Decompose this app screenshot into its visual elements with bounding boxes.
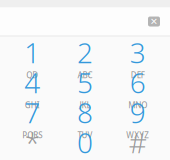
staticText: 4 — [24, 64, 40, 101]
staticText: ✕ — [150, 16, 158, 27]
button[interactable]: 1 — [6, 41, 59, 71]
staticText: DEF — [131, 70, 145, 80]
staticText: QD — [26, 70, 38, 80]
button[interactable]: 6 — [111, 71, 164, 101]
staticText: TUV — [77, 130, 92, 140]
staticText: * — [25, 124, 40, 160]
staticText: 1 — [24, 34, 40, 71]
staticText: 3 — [130, 34, 146, 71]
staticText: ABC — [77, 70, 92, 80]
button[interactable]: 7 — [6, 101, 59, 131]
staticText: 0 — [77, 124, 93, 160]
staticText: 5 — [77, 64, 93, 101]
staticText: 6 — [130, 64, 146, 101]
staticText: 8 — [77, 94, 93, 131]
staticText: GHI — [25, 100, 40, 110]
button[interactable]: # — [111, 131, 164, 160]
staticText: 7 — [24, 94, 40, 131]
staticText: 9 — [130, 94, 146, 131]
button[interactable]: 3 — [111, 41, 164, 71]
button[interactable]: 0 — [59, 131, 111, 160]
button[interactable]: Delete — [142, 10, 166, 32]
button[interactable]: 5 — [59, 71, 111, 101]
button[interactable]: 2 — [59, 41, 111, 71]
button[interactable]: 4 — [6, 71, 59, 101]
staticText: WXYZ — [126, 130, 149, 140]
staticText: JKL — [79, 100, 90, 110]
staticText: MNO — [128, 100, 147, 110]
staticText: PQRS — [22, 130, 42, 140]
button[interactable]: 8 — [59, 101, 111, 131]
staticText: 2 — [77, 34, 93, 71]
staticText: # — [129, 124, 147, 160]
button[interactable]: 9 — [111, 101, 164, 131]
button[interactable]: * — [6, 131, 59, 160]
